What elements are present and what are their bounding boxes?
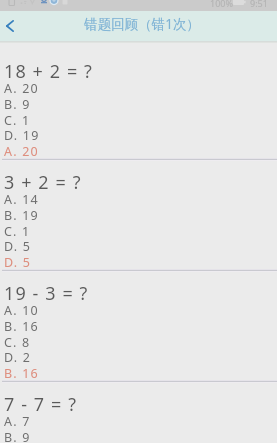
staticText: A. 7 <box>4 413 31 430</box>
staticText: 7 - 7 = ? <box>4 392 78 417</box>
staticText: 100% <box>210 0 233 8</box>
staticText: C. 1 <box>4 223 31 240</box>
button[interactable]: Back <box>0 11 24 41</box>
staticText: 18 + 2 = ? <box>4 59 94 84</box>
staticText: 9:51 <box>250 0 268 8</box>
staticText: D. 5 <box>4 238 32 255</box>
staticText: 3 + 2 = ? <box>4 170 82 195</box>
staticText: C. 1 <box>4 112 31 129</box>
staticText: D. 5 <box>4 254 32 271</box>
staticText: D. 2 <box>4 349 32 366</box>
button[interactable]: 18 + 2 = ? <box>0 50 277 161</box>
staticText: 19 - 3 = ? <box>4 281 89 306</box>
staticText: B. 16 <box>4 318 39 335</box>
staticText: 错题回顾（错1次） <box>84 15 200 33</box>
staticText: A. 14 <box>4 191 39 208</box>
staticText: B. 9 <box>4 96 31 113</box>
button[interactable]: 19 - 3 = ? <box>0 272 277 383</box>
button[interactable]: 3 + 2 = ? <box>0 161 277 272</box>
staticText: D. 19 <box>4 127 40 144</box>
staticText: B. 16 <box>4 365 39 382</box>
staticText: A. 10 <box>4 302 39 319</box>
staticText: B. 19 <box>4 207 39 224</box>
button[interactable]: 7 - 7 = ? <box>0 383 277 443</box>
staticText: A. 20 <box>4 143 39 160</box>
staticText: A. 20 <box>4 80 39 97</box>
staticText: C. 8 <box>4 334 31 351</box>
staticText: B. 9 <box>4 429 31 443</box>
